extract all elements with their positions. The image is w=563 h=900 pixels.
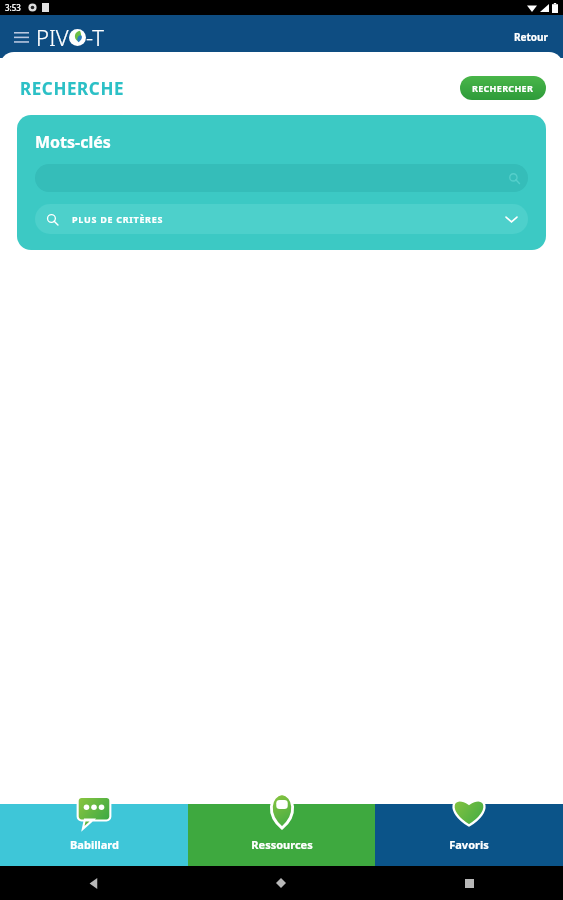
staticText: Retour (514, 30, 549, 44)
staticText: 3:53 (5, 2, 21, 13)
button[interactable]: Recents (454, 868, 484, 898)
staticText: Ressources (251, 837, 313, 852)
button[interactable]: Home (266, 868, 296, 898)
button[interactable]: Ressources (188, 804, 375, 866)
staticText: PIV (36, 22, 69, 52)
button[interactable]: Favoris (375, 804, 563, 866)
staticText: Mots-clés (35, 131, 111, 153)
button[interactable]: PLUS DE CRITÈRES (35, 204, 528, 234)
button[interactable]: RECHERCHER (460, 76, 546, 100)
staticText: RECHERCHER (472, 82, 534, 94)
button[interactable]: Menu (8, 24, 34, 50)
staticText: Babillard (70, 837, 119, 852)
staticText: -T (86, 22, 104, 52)
staticText: Favoris (449, 837, 489, 852)
button[interactable]: Back (79, 868, 109, 898)
staticText: PLUS DE CRITÈRES (72, 213, 164, 225)
staticText: RECHERCHE (20, 77, 125, 100)
button[interactable]: Retour (514, 30, 549, 44)
button[interactable]: Babillard (0, 804, 188, 866)
